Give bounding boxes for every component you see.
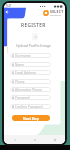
button[interactable]: Phone — [10, 79, 51, 84]
button[interactable]: Name — [10, 62, 51, 67]
staticText: 9:41 — [6, 4, 12, 8]
staticText: Username — [15, 54, 31, 58]
button[interactable]: Email Address — [10, 70, 51, 75]
staticText: Phone — [15, 80, 25, 84]
button[interactable]: Upload profile image — [32, 33, 38, 40]
staticText: REGISTER — [21, 22, 46, 29]
button[interactable]: Back — [5, 10, 9, 14]
staticText: SELECT — [50, 9, 64, 14]
button[interactable]: Password — [10, 95, 51, 100]
staticText: Alternative Phone — [15, 88, 42, 92]
button[interactable]: Recents — [45, 135, 65, 144]
staticText: solutions ltd — [50, 14, 61, 17]
button[interactable]: Alternative Phone — [10, 87, 51, 92]
staticText: Email Address — [15, 71, 37, 75]
staticText: Password — [15, 96, 30, 100]
button[interactable]: Back — [4, 135, 25, 144]
button[interactable]: Home — [25, 135, 45, 144]
staticText: Next Step — [23, 116, 40, 120]
button[interactable]: Next Step — [12, 115, 50, 121]
staticText: Confirm Password — [15, 105, 43, 109]
button[interactable]: Username — [10, 53, 51, 58]
staticText: Upload Profile Image — [16, 43, 51, 48]
button[interactable]: Confirm Password — [10, 104, 51, 109]
staticText: Name — [15, 63, 24, 67]
